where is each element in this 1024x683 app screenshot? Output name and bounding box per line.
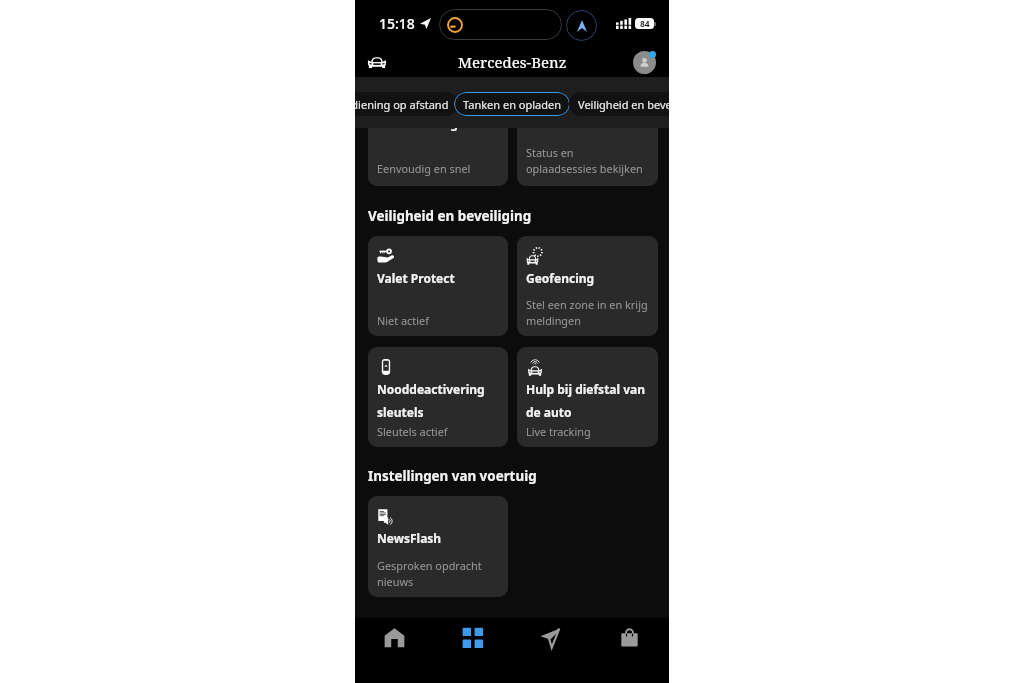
staticText: Veiligheid en beveiliging — [578, 97, 669, 112]
staticText: Niet actief — [377, 313, 429, 328]
staticText: Sleutels actief — [377, 424, 448, 439]
staticText: Vast in lading — [377, 128, 458, 131]
button[interactable]: Status en oplaadsessies bekijken — [517, 128, 658, 186]
button[interactable]: Profile — [629, 47, 659, 77]
button[interactable]: Nooddeactivering sleutels — [368, 347, 508, 447]
staticText: Bediening op afstand — [355, 97, 449, 112]
staticText: 84 — [640, 18, 650, 29]
staticText: Live tracking — [526, 424, 591, 439]
button[interactable]: Shop — [590, 618, 669, 683]
button[interactable]: Geofencing — [517, 236, 658, 336]
staticText: Hulp bij diefstal van de auto — [526, 381, 653, 420]
button[interactable]: Features — [433, 618, 511, 683]
button[interactable]: Hulp bij diefstal van de auto — [517, 347, 658, 447]
staticText: Valet Protect — [377, 270, 455, 286]
staticText: Mercedes-Benz — [458, 52, 567, 72]
staticText: 15:18 — [379, 14, 415, 33]
button[interactable]: Navigation — [511, 618, 590, 683]
button[interactable]: Valet Protect — [368, 236, 508, 336]
staticText: Stel een zone in en krijg meldingen — [526, 297, 653, 328]
staticText: Instellingen van voertuig — [368, 467, 537, 485]
staticText: Eenvoudig en snel — [377, 161, 471, 176]
staticText: Status en oplaadsessies bekijken — [526, 145, 643, 176]
button[interactable]: NewsFlash — [368, 496, 508, 597]
staticText: Veiligheid en beveiliging — [368, 207, 532, 225]
button[interactable]: Vehicle — [363, 48, 391, 76]
button[interactable]: Tanken en opladen — [454, 92, 570, 116]
staticText: Tanken en opladen — [463, 97, 561, 112]
button[interactable]: Veiligheid en beveiliging — [569, 92, 669, 116]
button[interactable]: Bediening op afstand — [355, 92, 458, 116]
staticText: Gesproken opdracht nieuws — [377, 558, 503, 589]
staticText: NewsFlash — [377, 530, 442, 546]
staticText: Nooddeactivering sleutels — [377, 381, 503, 420]
button[interactable]: Home — [355, 618, 433, 683]
staticText: Geofencing — [526, 270, 595, 286]
button[interactable]: Eenvoudig en snel — [368, 128, 508, 186]
